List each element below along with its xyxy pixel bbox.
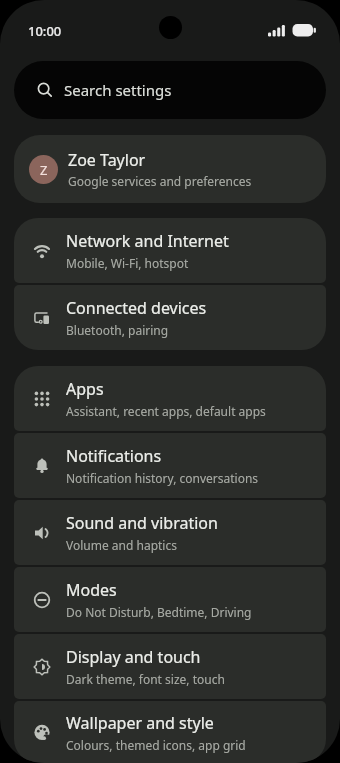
staticText: Notification history, conversations — [66, 470, 259, 486]
button[interactable]: Search settings — [14, 61, 326, 119]
staticText: Connected devices — [66, 297, 207, 319]
staticText: Do Not Disturb, Bedtime, Driving — [66, 604, 252, 620]
staticText: Display and touch — [66, 646, 201, 668]
staticText: Sound and vibration — [66, 512, 218, 534]
staticText: Bluetooth, pairing — [66, 322, 169, 338]
button[interactable]: Connected devices — [14, 285, 326, 350]
staticText: Apps — [66, 378, 104, 400]
staticText: Google services and preferences — [68, 173, 252, 189]
button[interactable]: Apps — [14, 366, 326, 431]
staticText: Z — [40, 161, 48, 179]
staticText: Dark theme, font size, touch — [66, 671, 225, 687]
staticText: Modes — [66, 579, 117, 601]
staticText: Mobile, Wi-Fi, hotspot — [66, 255, 189, 271]
staticText: Volume and haptics — [66, 537, 177, 553]
staticText: Search settings — [64, 80, 172, 100]
button[interactable]: Sound and vibration — [14, 500, 326, 565]
staticText: Assistant, recent apps, default apps — [66, 403, 266, 419]
button[interactable]: Wallpaper and style — [14, 701, 326, 763]
button[interactable]: Display and touch — [14, 634, 326, 699]
staticText: Network and Internet — [66, 230, 229, 252]
staticText: Notifications — [66, 445, 162, 467]
staticText: Colours, themed icons, app grid — [66, 737, 246, 753]
staticText: 10:00 — [28, 22, 62, 40]
button[interactable]: Network and Internet — [14, 218, 326, 283]
button[interactable]: Notifications — [14, 433, 326, 498]
staticText: Zoe Taylor — [68, 149, 146, 171]
staticText: Wallpaper and style — [66, 712, 214, 734]
button[interactable]: Modes — [14, 567, 326, 632]
button[interactable]: Z — [14, 135, 326, 203]
